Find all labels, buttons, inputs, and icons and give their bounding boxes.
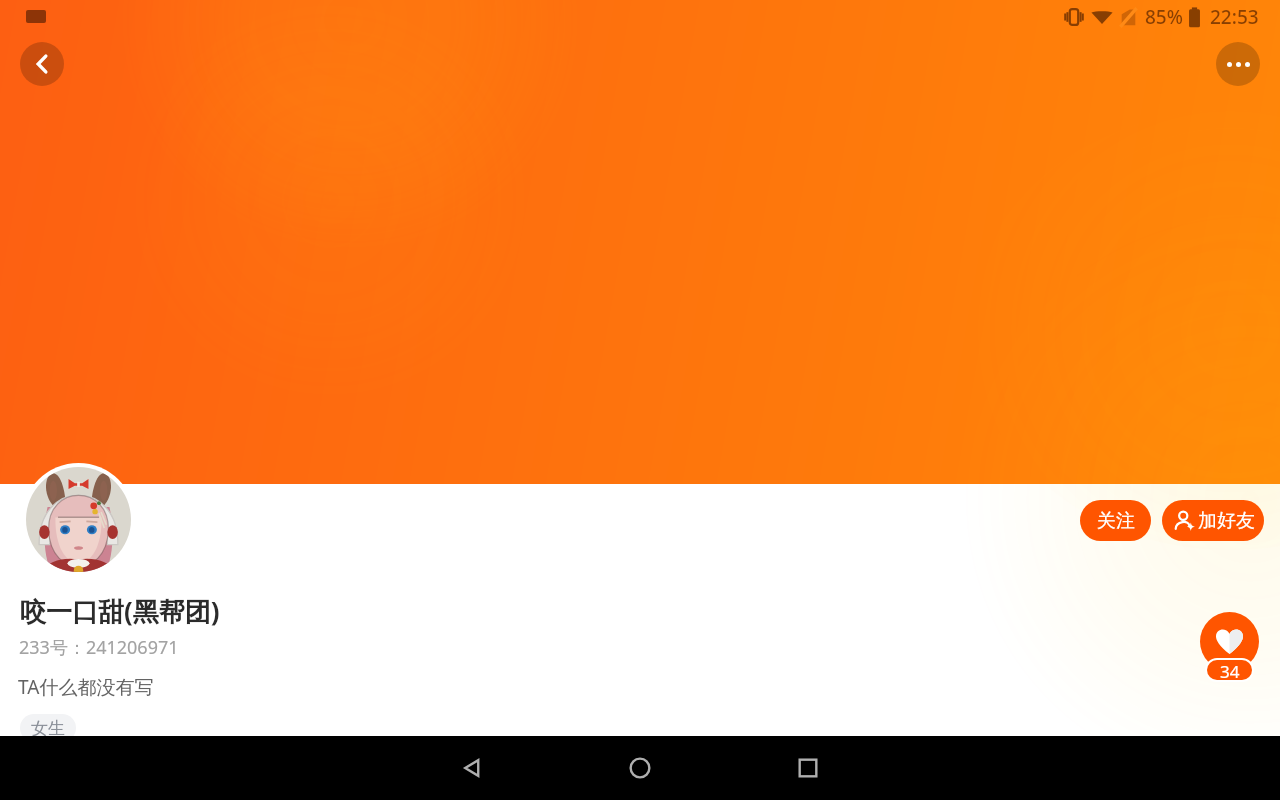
button[interactable]: Like bbox=[1200, 612, 1259, 671]
staticText: 女生 bbox=[31, 718, 65, 739]
button[interactable]: Recent apps bbox=[744, 736, 872, 800]
staticText: 85% bbox=[1145, 4, 1183, 30]
staticText: TA什么都没有写 bbox=[18, 674, 154, 700]
staticText: 加好友 bbox=[1198, 509, 1255, 533]
button[interactable]: Home bbox=[576, 736, 704, 800]
staticText: 关注 bbox=[1097, 509, 1135, 533]
button[interactable]: Back bbox=[408, 736, 536, 800]
staticText: 咬一口甜(黑帮团) bbox=[20, 593, 220, 629]
button[interactable]: More options bbox=[1216, 42, 1260, 86]
button[interactable]: 关注 bbox=[1080, 500, 1151, 541]
button[interactable]: Back bbox=[20, 42, 64, 86]
staticText: 233号：241206971 bbox=[19, 635, 179, 660]
button[interactable]: 女生 bbox=[20, 714, 76, 742]
staticText: 34 bbox=[1220, 660, 1240, 680]
staticText: 22:53 bbox=[1210, 4, 1259, 30]
button[interactable]: 34 bbox=[1207, 660, 1252, 680]
button[interactable]: Profile photo bbox=[26, 467, 131, 572]
button[interactable]: 加好友 bbox=[1162, 500, 1264, 541]
